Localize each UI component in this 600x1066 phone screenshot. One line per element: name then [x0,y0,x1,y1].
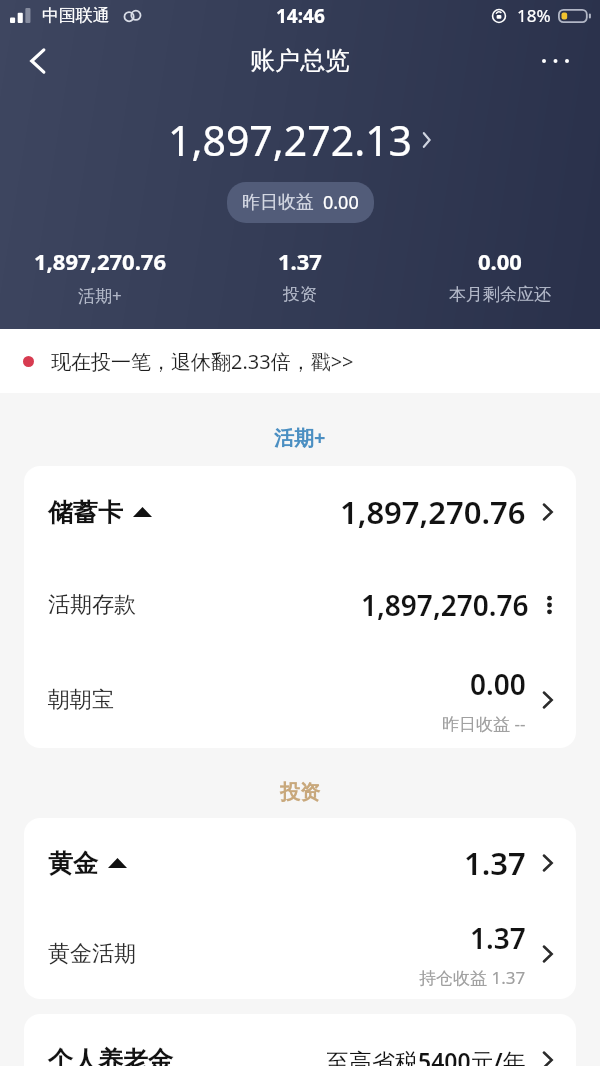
staticText: 活期存款 [48,591,136,619]
staticText: 活期+ [78,284,122,307]
button[interactable]: 黄金活期 [24,908,576,999]
button[interactable]: 现在投一笔，退休翻2.33倍，戳>> [0,329,600,393]
staticText: 活期+ [274,424,326,451]
button[interactable]: 1.37 [200,246,400,305]
staticText: 投资 [283,284,317,305]
staticText: 1,897,270.76 [34,246,166,276]
staticText: 1,897,270.76 [340,491,526,533]
button[interactable]: 个人养老金 [24,1014,576,1066]
staticText: 昨日收益 [242,191,314,214]
staticText: 昨日收益 -- [442,712,526,735]
button[interactable]: 昨日收益 [227,182,374,223]
staticText: 账户总览 [250,45,350,76]
staticText: 1,897,270.76 [361,586,529,624]
button[interactable]: 0.00 [400,246,600,305]
staticText: 14:46 [276,3,325,29]
button[interactable]: 1,897,272.13 [0,112,600,168]
staticText: 0.00 [478,246,522,276]
staticText: 1.37 [470,919,526,957]
staticText: 1,897,272.13 [168,112,413,168]
staticText: 黄金活期 [48,940,136,968]
staticText: 投资 [280,780,320,805]
staticText: 朝朝宝 [48,686,114,714]
staticText: 黄金 [48,848,98,879]
staticText: 1.37 [464,842,526,884]
staticText: 0.00 [470,665,526,703]
staticText: 现在投一笔，退休翻2.33倍，戳>> [51,348,354,375]
staticText: 储蓄卡 [48,497,123,528]
staticText: 1.37 [278,246,322,276]
staticText: 持仓收益 1.37 [419,966,526,989]
staticText: 至高省税5400元/年 [326,1045,526,1066]
staticText: 0.00 [323,190,359,215]
button[interactable]: 储蓄卡 [24,466,576,558]
button[interactable]: 1,897,270.76 [0,246,200,307]
staticText: 中国联通 [42,5,110,26]
button[interactable]: Back [16,38,62,84]
button[interactable]: 黄金 [24,818,576,908]
button[interactable]: 活期存款 [24,558,576,652]
button[interactable]: More options [532,38,578,84]
button[interactable]: 朝朝宝 [24,652,576,748]
staticText: 个人养老金 [48,1045,173,1066]
staticText: 18% [517,4,551,27]
staticText: 本月剩余应还 [449,284,551,305]
